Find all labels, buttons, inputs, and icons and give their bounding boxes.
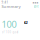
staticText: Edit bbox=[33, 5, 38, 8]
staticText: ▪▪▪ bbox=[32, 1, 38, 4]
staticText: 100 bbox=[1, 18, 16, 30]
staticText: 9:41 bbox=[1, 1, 8, 4]
staticText: of 100 goal bbox=[1, 30, 18, 34]
staticText: Summary bbox=[1, 4, 20, 9]
staticText: 42 bbox=[23, 20, 27, 25]
